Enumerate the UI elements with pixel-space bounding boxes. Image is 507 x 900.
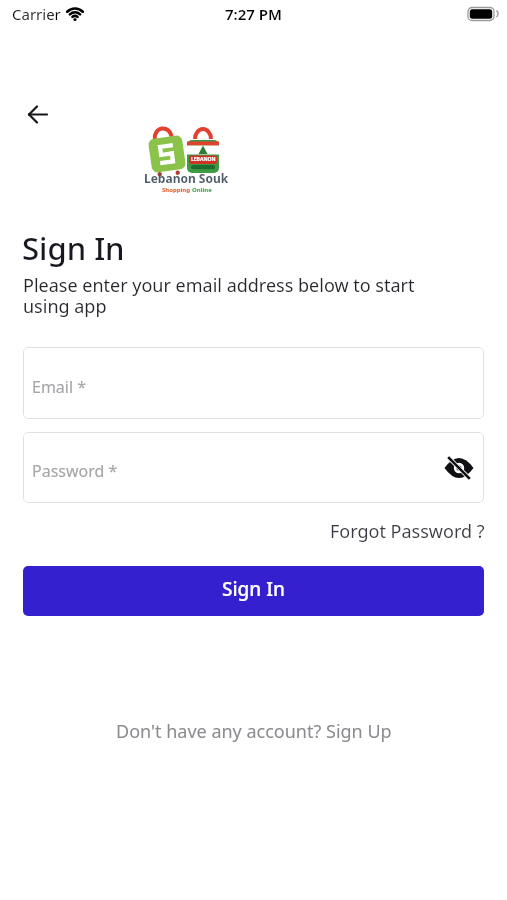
staticText: Lebanon Souk — [144, 170, 229, 186]
staticText: Sign Up — [326, 719, 392, 744]
staticText: Sign In — [222, 576, 285, 602]
button[interactable]: Password * — [23, 432, 484, 503]
staticText: Shopping — [162, 186, 192, 194]
button[interactable] — [440, 449, 478, 487]
button[interactable] — [18, 94, 58, 134]
staticText: Email * — [32, 376, 87, 398]
button[interactable]: Sign In — [23, 566, 484, 616]
staticText: Password * — [32, 460, 118, 482]
staticText: Carrier — [12, 4, 61, 24]
staticText: 7:27 PM — [225, 4, 282, 24]
button[interactable]: Email * — [23, 347, 484, 419]
button[interactable]: Forgot Password ? — [330, 519, 485, 544]
staticText: Online — [192, 186, 212, 194]
staticText: Please enter your email address below to… — [23, 273, 415, 319]
staticText: Sign In — [22, 227, 125, 269]
button[interactable]: Don't have any account? — [116, 719, 392, 744]
staticText: Don't have any account? — [116, 719, 326, 744]
staticText: LEBANON — [191, 156, 216, 163]
